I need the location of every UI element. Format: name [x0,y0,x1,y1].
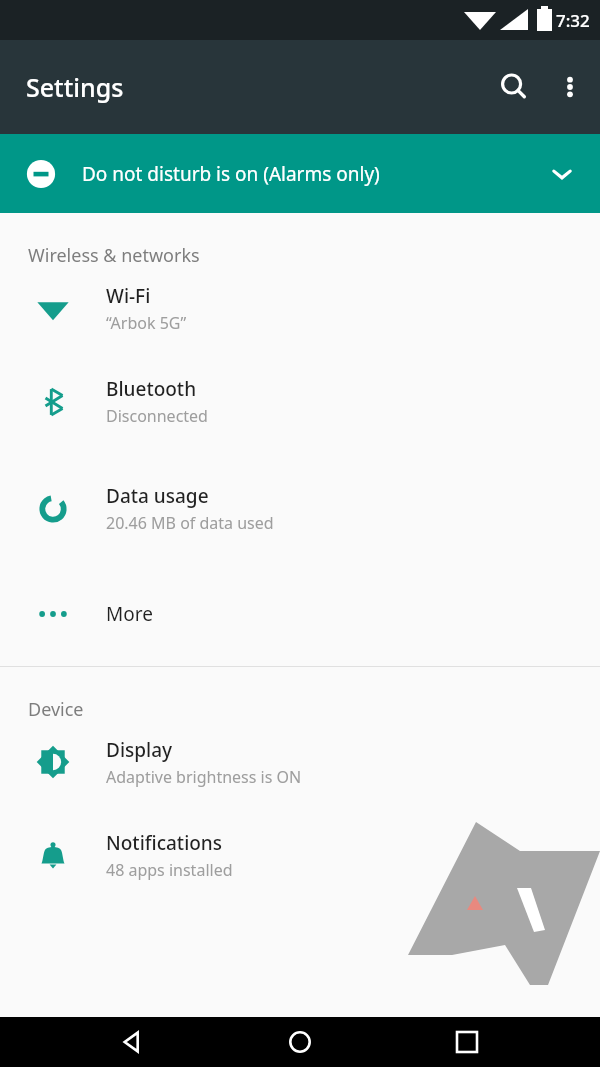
staticText: “Arbok 5G” [106,312,187,334]
button[interactable]: Search [486,59,542,115]
staticText: Disconnected [106,405,208,427]
button[interactable]: Data usage [0,455,600,562]
staticText: Display [106,737,173,763]
staticText: 48 apps installed [106,859,233,881]
button[interactable]: More [0,562,600,666]
button[interactable]: Do not disturb is on (Alarms only) [0,134,600,213]
staticText: More [106,601,153,627]
staticText: 7:32 [556,9,590,32]
button[interactable]: Display [0,722,600,802]
button[interactable]: Back [108,1017,158,1067]
staticText: Adaptive brightness is ON [106,766,302,788]
staticText: Settings [26,70,124,104]
staticText: Wi-Fi [106,283,151,309]
staticText: Device [28,697,84,722]
button[interactable]: More options [542,59,598,115]
staticText: Notifications [106,830,223,856]
staticText: Do not disturb is on (Alarms only) [82,161,380,187]
button[interactable]: Wi-Fi [0,268,600,348]
staticText: Bluetooth [106,376,197,402]
button[interactable]: Bluetooth [0,348,600,455]
staticText: Data usage [106,483,209,509]
staticText: 20.46 MB of data used [106,512,274,534]
button[interactable]: Home [275,1017,325,1067]
button[interactable]: Notifications [0,802,600,909]
staticText: Wireless & networks [28,243,200,268]
button[interactable]: Recent apps [442,1017,492,1067]
